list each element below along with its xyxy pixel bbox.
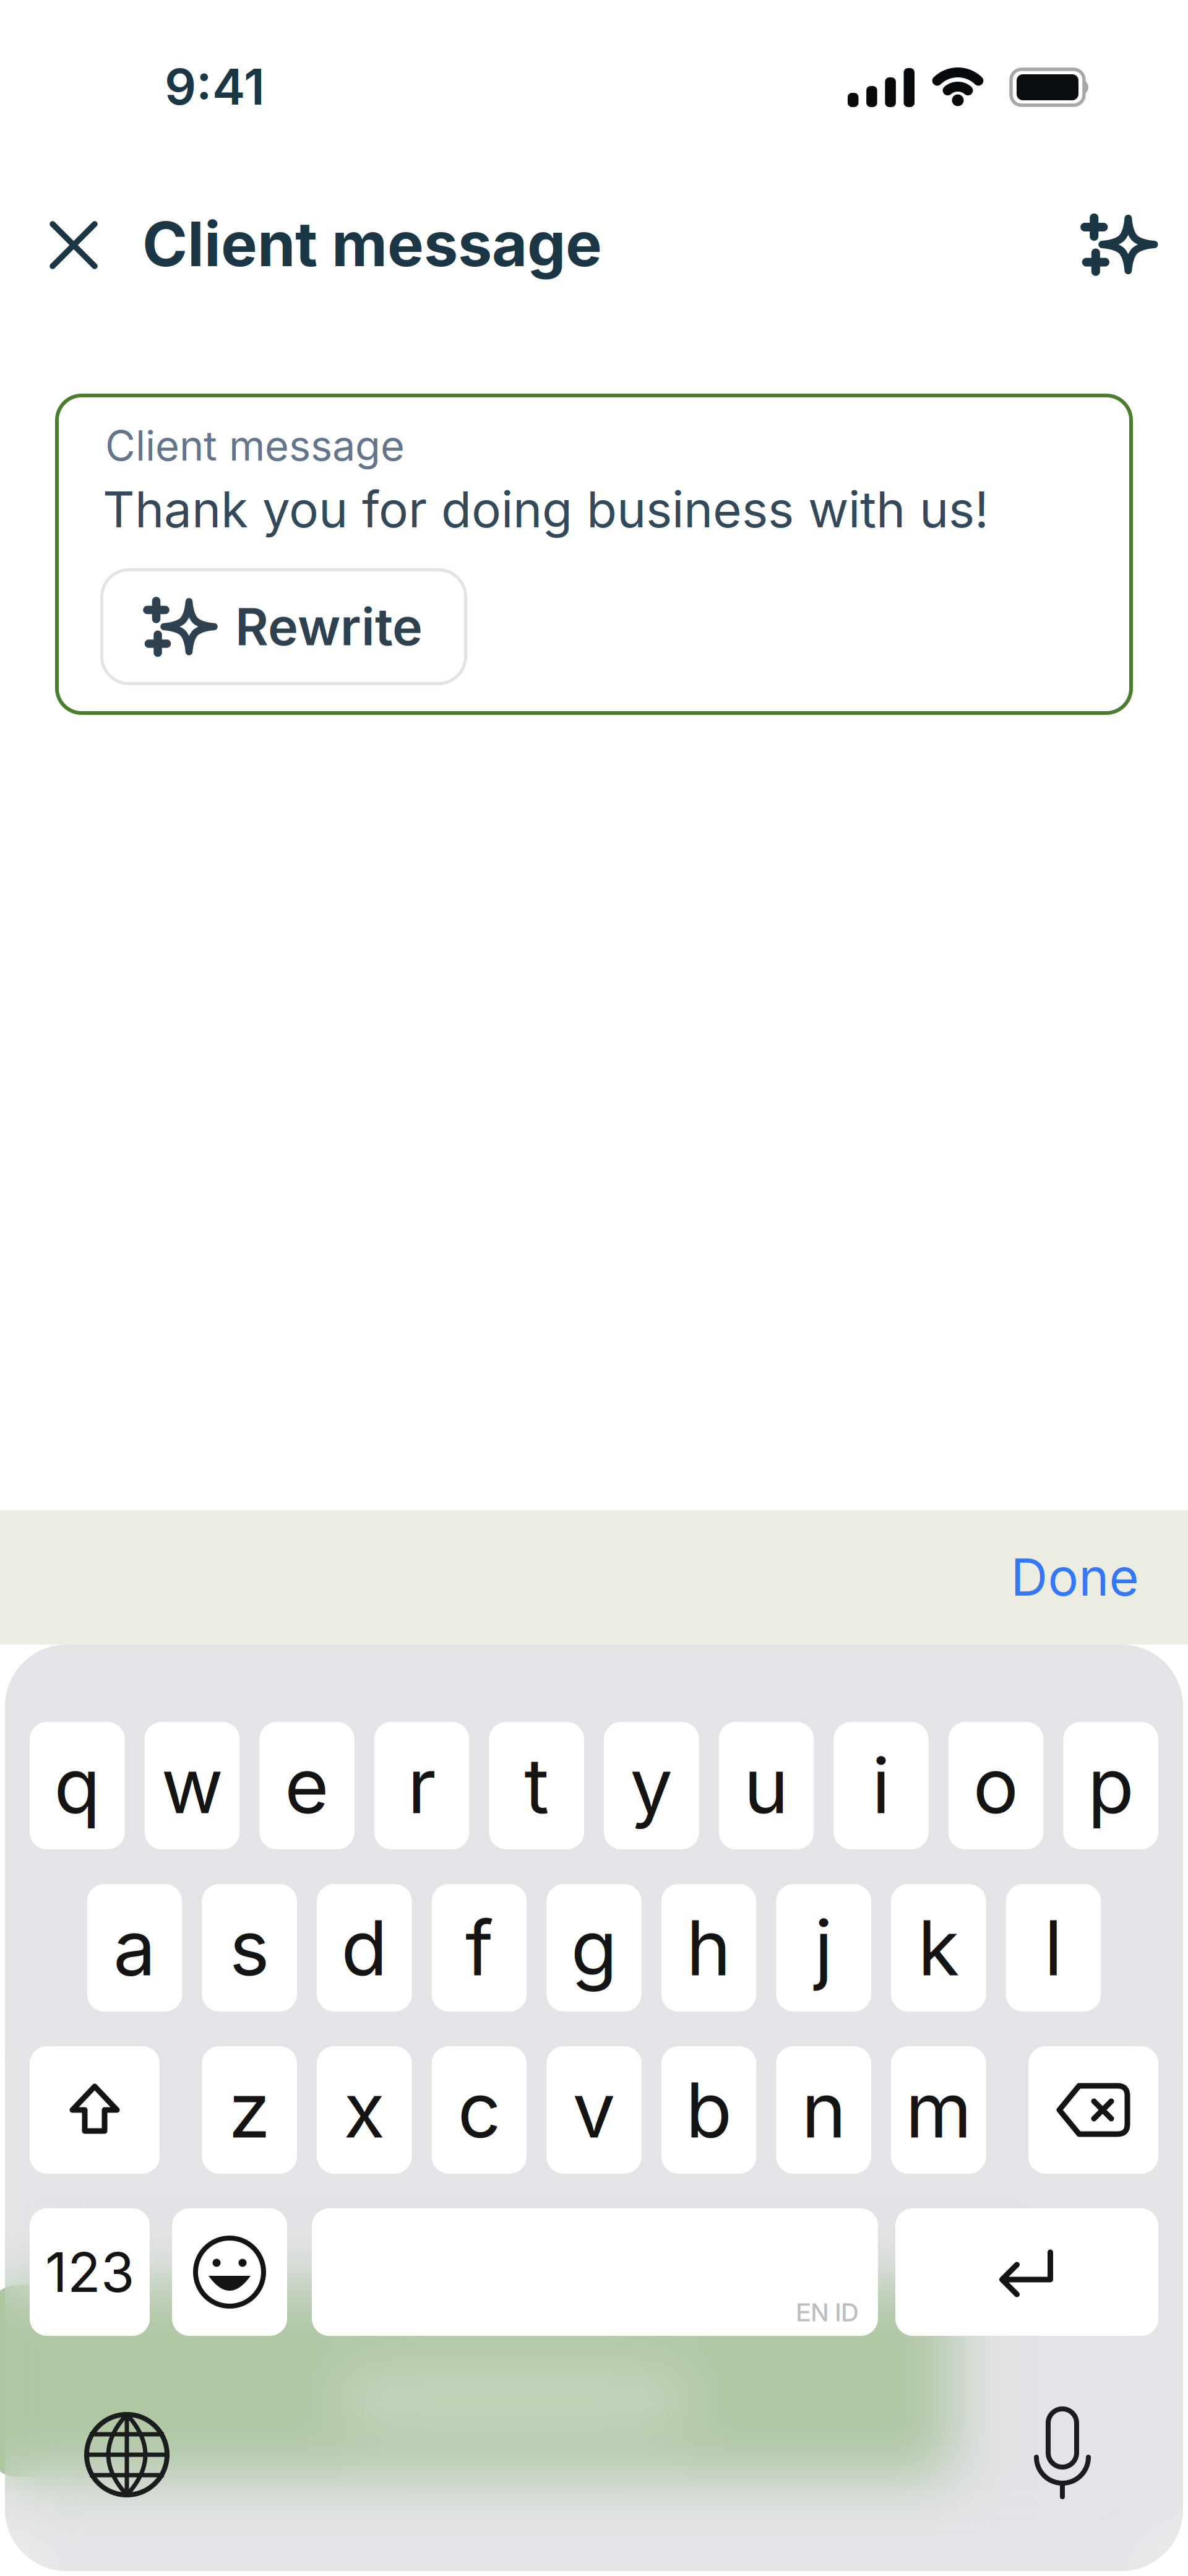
button[interactable]: Emoji <box>172 2208 287 2336</box>
button[interactable]: a <box>87 1884 182 2012</box>
staticText: f <box>465 1902 493 1994</box>
staticText: x <box>344 2064 385 2156</box>
button[interactable]: t <box>489 1722 584 1849</box>
button[interactable]: p <box>1063 1722 1158 1849</box>
button[interactable]: Shift <box>30 2046 160 2174</box>
staticText: Client message <box>142 207 602 281</box>
staticText: a <box>113 1902 156 1994</box>
button[interactable]: x <box>317 2046 412 2174</box>
staticText: y <box>630 1740 673 1832</box>
staticText: p <box>1088 1740 1134 1832</box>
button[interactable]: o <box>948 1722 1043 1849</box>
button[interactable]: n <box>776 2046 871 2174</box>
staticText: g <box>571 1902 617 1994</box>
staticText: z <box>228 2064 271 2156</box>
button[interactable]: g <box>546 1884 642 2012</box>
button[interactable]: y <box>604 1722 699 1849</box>
button[interactable]: b <box>661 2046 756 2174</box>
staticText: h <box>686 1902 731 1994</box>
staticText: 123 <box>45 2239 134 2305</box>
staticText: 9:41 <box>165 57 265 117</box>
button[interactable]: AI assistant <box>1068 198 1161 291</box>
button[interactable]: Close <box>37 208 111 282</box>
staticText: v <box>573 2064 615 2156</box>
button[interactable]: Next keyboard <box>68 2402 186 2507</box>
staticText: j <box>814 1902 833 1994</box>
staticText: EN ID <box>796 2297 859 2327</box>
button[interactable]: j <box>776 1884 871 2012</box>
button[interactable]: q <box>30 1722 125 1849</box>
button[interactable]: m <box>891 2046 986 2174</box>
staticText: l <box>1044 1902 1063 1994</box>
button[interactable]: k <box>891 1884 986 2012</box>
button[interactable]: e <box>259 1722 354 1849</box>
button[interactable]: f <box>432 1884 527 2012</box>
button[interactable]: Done <box>1011 1546 1139 1608</box>
staticText: r <box>408 1740 436 1832</box>
staticText: Client message <box>105 421 405 471</box>
button[interactable]: c <box>432 2046 527 2174</box>
staticText: q <box>54 1740 100 1832</box>
staticText: e <box>285 1740 329 1832</box>
button[interactable]: u <box>719 1722 814 1849</box>
staticText: n <box>801 2064 846 2156</box>
staticText: b <box>686 2064 732 2156</box>
staticText: m <box>905 2064 972 2156</box>
button[interactable]: Return <box>895 2208 1158 2336</box>
staticText: t <box>524 1740 549 1832</box>
button[interactable]: h <box>661 1884 756 2012</box>
staticText: c <box>458 2064 501 2156</box>
staticText: o <box>973 1740 1019 1832</box>
staticText: k <box>918 1902 959 1994</box>
staticText: d <box>341 1902 388 1994</box>
staticText: s <box>229 1902 270 1994</box>
staticText: i <box>872 1740 890 1832</box>
staticText: u <box>744 1740 789 1832</box>
button[interactable]: Dictate <box>1013 2402 1112 2507</box>
button[interactable]: v <box>546 2046 642 2174</box>
button[interactable]: Space <box>312 2208 878 2336</box>
button[interactable]: r <box>374 1722 469 1849</box>
button[interactable]: 123 <box>30 2208 150 2336</box>
button[interactable]: Delete <box>1028 2046 1158 2174</box>
staticText: Thank you for doing business with us! <box>103 479 989 539</box>
button[interactable]: i <box>834 1722 929 1849</box>
button[interactable]: w <box>145 1722 240 1849</box>
staticText: w <box>161 1740 223 1832</box>
button[interactable]: l <box>1006 1884 1101 2012</box>
staticText: Rewrite <box>235 596 423 658</box>
button[interactable]: Rewrite <box>100 568 467 685</box>
button[interactable]: z <box>202 2046 297 2174</box>
staticText: Done <box>1011 1546 1139 1608</box>
button[interactable]: s <box>202 1884 297 2012</box>
button[interactable]: d <box>317 1884 412 2012</box>
